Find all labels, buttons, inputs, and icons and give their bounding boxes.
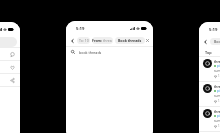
staticText: 12 [218, 99, 220, 103]
staticText: 12 [218, 124, 220, 128]
staticText: threadsapp [214, 84, 220, 88]
button[interactable]: book threads [71, 47, 148, 57]
button[interactable]: Book threads [115, 37, 145, 44]
staticText: picks of the week [217, 64, 220, 68]
staticText: summer reading [214, 69, 220, 73]
staticText: From: [92, 38, 103, 43]
button[interactable]: Search [0, 37, 17, 47]
staticText: Book threads [118, 38, 142, 43]
button[interactable]: Clear search [145, 38, 150, 43]
button[interactable] [0, 74, 15, 86]
staticText: summer reading [214, 119, 220, 123]
staticText: book threads [79, 50, 102, 55]
button[interactable]: Back [202, 39, 208, 45]
staticText: threads [103, 38, 113, 43]
staticText: Book threads [214, 39, 220, 44]
staticText: 12 [218, 74, 220, 78]
button[interactable] [0, 48, 15, 60]
staticText: summer reading [214, 94, 220, 98]
button[interactable]: To: 10 [77, 37, 90, 44]
staticText: picks of the week [217, 114, 220, 118]
button[interactable]: Back [69, 38, 75, 44]
button[interactable]: threadsapp [199, 82, 220, 107]
staticText: picks of the week [217, 89, 220, 93]
button[interactable]: threadsapp [199, 57, 220, 82]
button[interactable]: Book threads [210, 38, 220, 45]
staticText: 5:19 [76, 26, 85, 32]
staticText: threadsapp [214, 59, 220, 63]
button[interactable]: Top [205, 50, 212, 55]
staticText: threadsapp [214, 109, 220, 113]
button[interactable]: From: [92, 37, 113, 44]
button[interactable]: threadsapp [199, 107, 220, 132]
staticText: 5:19 [209, 27, 218, 33]
button[interactable] [0, 61, 15, 73]
staticText: To: 10 [79, 38, 89, 43]
